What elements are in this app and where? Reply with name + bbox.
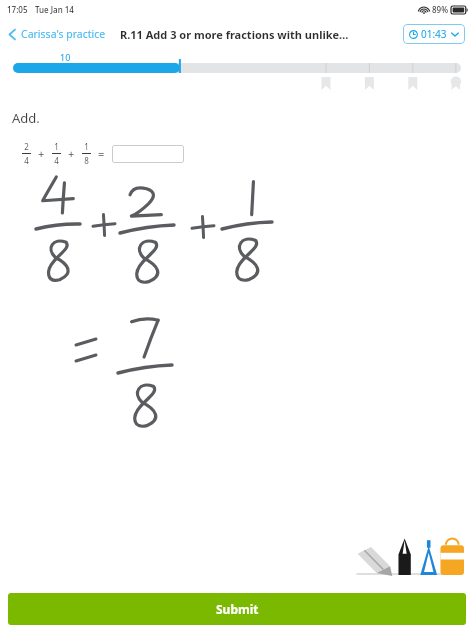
button[interactable]: Drawing tools <box>352 536 464 578</box>
staticText: 4 <box>24 155 29 166</box>
staticText: + <box>38 146 45 161</box>
staticText: 1 <box>84 141 89 152</box>
staticText: 8 <box>84 155 89 166</box>
button[interactable]: Submit <box>8 593 466 625</box>
staticText: 2 <box>24 141 29 152</box>
staticText: 1 <box>54 141 59 152</box>
staticText: 89% <box>432 4 448 15</box>
button[interactable]: 01:43 <box>403 24 465 44</box>
staticText: R.11 Add 3 or more fractions with unlike… <box>120 27 349 42</box>
staticText: + <box>68 146 75 161</box>
staticText: 01:43 <box>421 27 447 41</box>
staticText: 4 <box>54 155 59 166</box>
staticText: = <box>98 146 105 161</box>
staticText: 17:05 <box>7 4 28 15</box>
staticText: Submit <box>216 601 259 617</box>
staticText: Tue Jan 14 <box>35 4 74 15</box>
button[interactable]: Carissa's practice <box>0 23 110 45</box>
staticText: Carissa's practice <box>21 27 106 41</box>
staticText: 10 <box>60 51 71 63</box>
button[interactable] <box>112 145 184 163</box>
staticText: Add. <box>12 109 40 127</box>
